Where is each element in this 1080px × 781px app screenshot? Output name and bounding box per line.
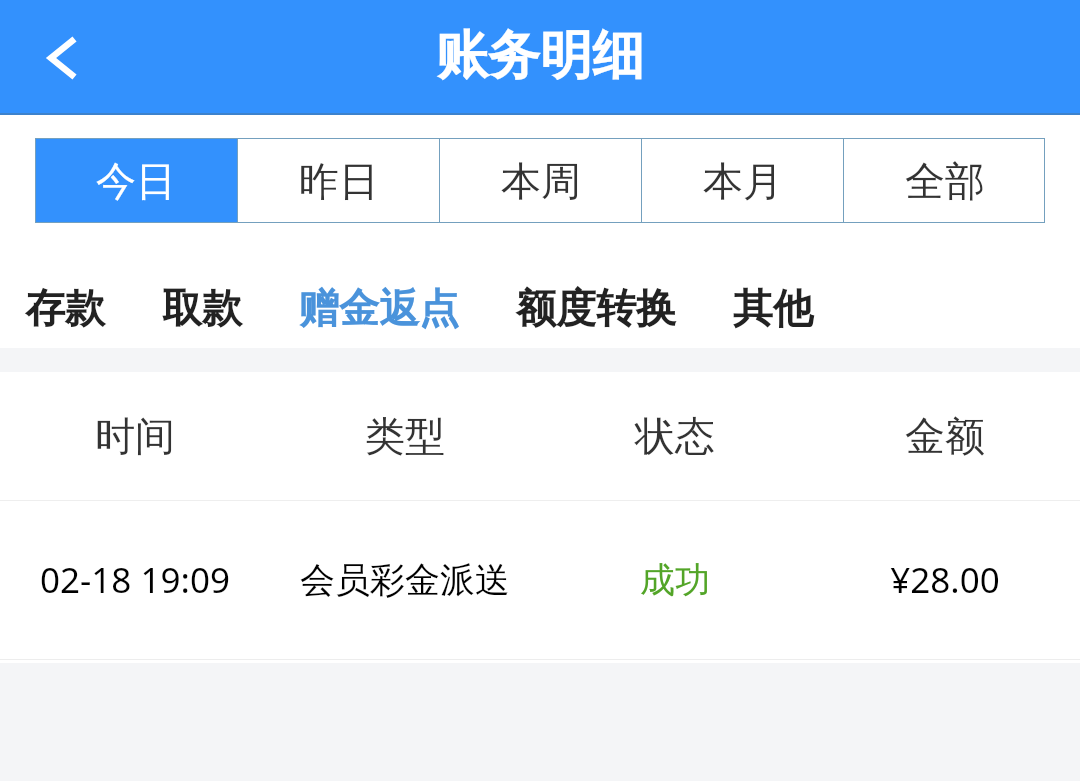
button[interactable]: 额度转换 [516,223,676,348]
staticText: 金额 [810,411,1080,461]
button[interactable]: 本周 [440,138,641,223]
staticText: 会员彩金派送 [270,558,540,602]
staticText: 赠金返点 [299,283,459,333]
staticText: 额度转换 [516,283,676,333]
button[interactable]: 取款 [162,223,242,348]
button[interactable]: 02-18 19:09 [0,501,1080,659]
staticText: 成功 [540,558,810,602]
staticText: 本周 [501,156,581,206]
staticText: 时间 [0,411,270,461]
staticText: 状态 [540,411,810,461]
button[interactable]: 存款 [25,223,105,348]
staticText: 账务明细 [436,23,644,89]
staticText: 其他 [733,283,813,333]
staticText: 02-18 19:09 [0,556,270,604]
staticText: 全部 [905,156,985,206]
button[interactable]: Back [16,13,106,103]
button[interactable]: 全部 [844,138,1045,223]
staticText: 本月 [703,156,783,206]
staticText: ¥28.00 [810,556,1080,604]
button[interactable]: 今日 [35,138,237,223]
button[interactable]: 昨日 [238,138,439,223]
staticText: 取款 [162,283,242,333]
staticText: 存款 [25,283,105,333]
staticText: 类型 [270,411,540,461]
button[interactable]: 本月 [642,138,843,223]
button[interactable]: 赠金返点 [299,223,459,348]
button[interactable]: 其他 [733,223,813,348]
staticText: 昨日 [299,156,379,206]
staticText: 今日 [96,156,176,206]
